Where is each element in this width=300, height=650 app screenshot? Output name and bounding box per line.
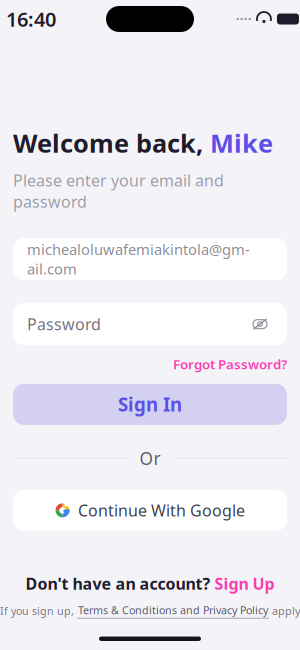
staticText: Don't have an account?: [25, 573, 214, 594]
button[interactable]: Continue With Google: [13, 490, 287, 531]
button[interactable]: Show password: [247, 311, 273, 337]
staticText: Terms & Conditions and Privacy Policy: [78, 603, 268, 617]
staticText: If you sign up,: [0, 604, 77, 618]
staticText: Sign Up: [214, 573, 274, 594]
staticText: apply: [269, 604, 300, 618]
button[interactable]: If you sign up,: [0, 603, 300, 618]
staticText: Forgot Password?: [173, 355, 287, 373]
button[interactable]: Forgot Password?: [173, 353, 287, 375]
staticText: Continue With Google: [78, 500, 245, 521]
staticText: 16:40: [6, 6, 56, 32]
staticText: Please enter your email and password: [13, 170, 224, 212]
staticText: Password: [27, 313, 101, 335]
staticText: Or: [139, 447, 160, 470]
staticText: Sign In: [118, 392, 182, 417]
button[interactable]: Don't have an account?: [25, 573, 274, 594]
staticText: Welcome back,: [13, 126, 203, 160]
staticText: Mike: [203, 126, 273, 160]
staticText: michealoluwafemiakintola@gmail.com: [27, 240, 250, 279]
button[interactable]: Sign In: [13, 384, 287, 425]
